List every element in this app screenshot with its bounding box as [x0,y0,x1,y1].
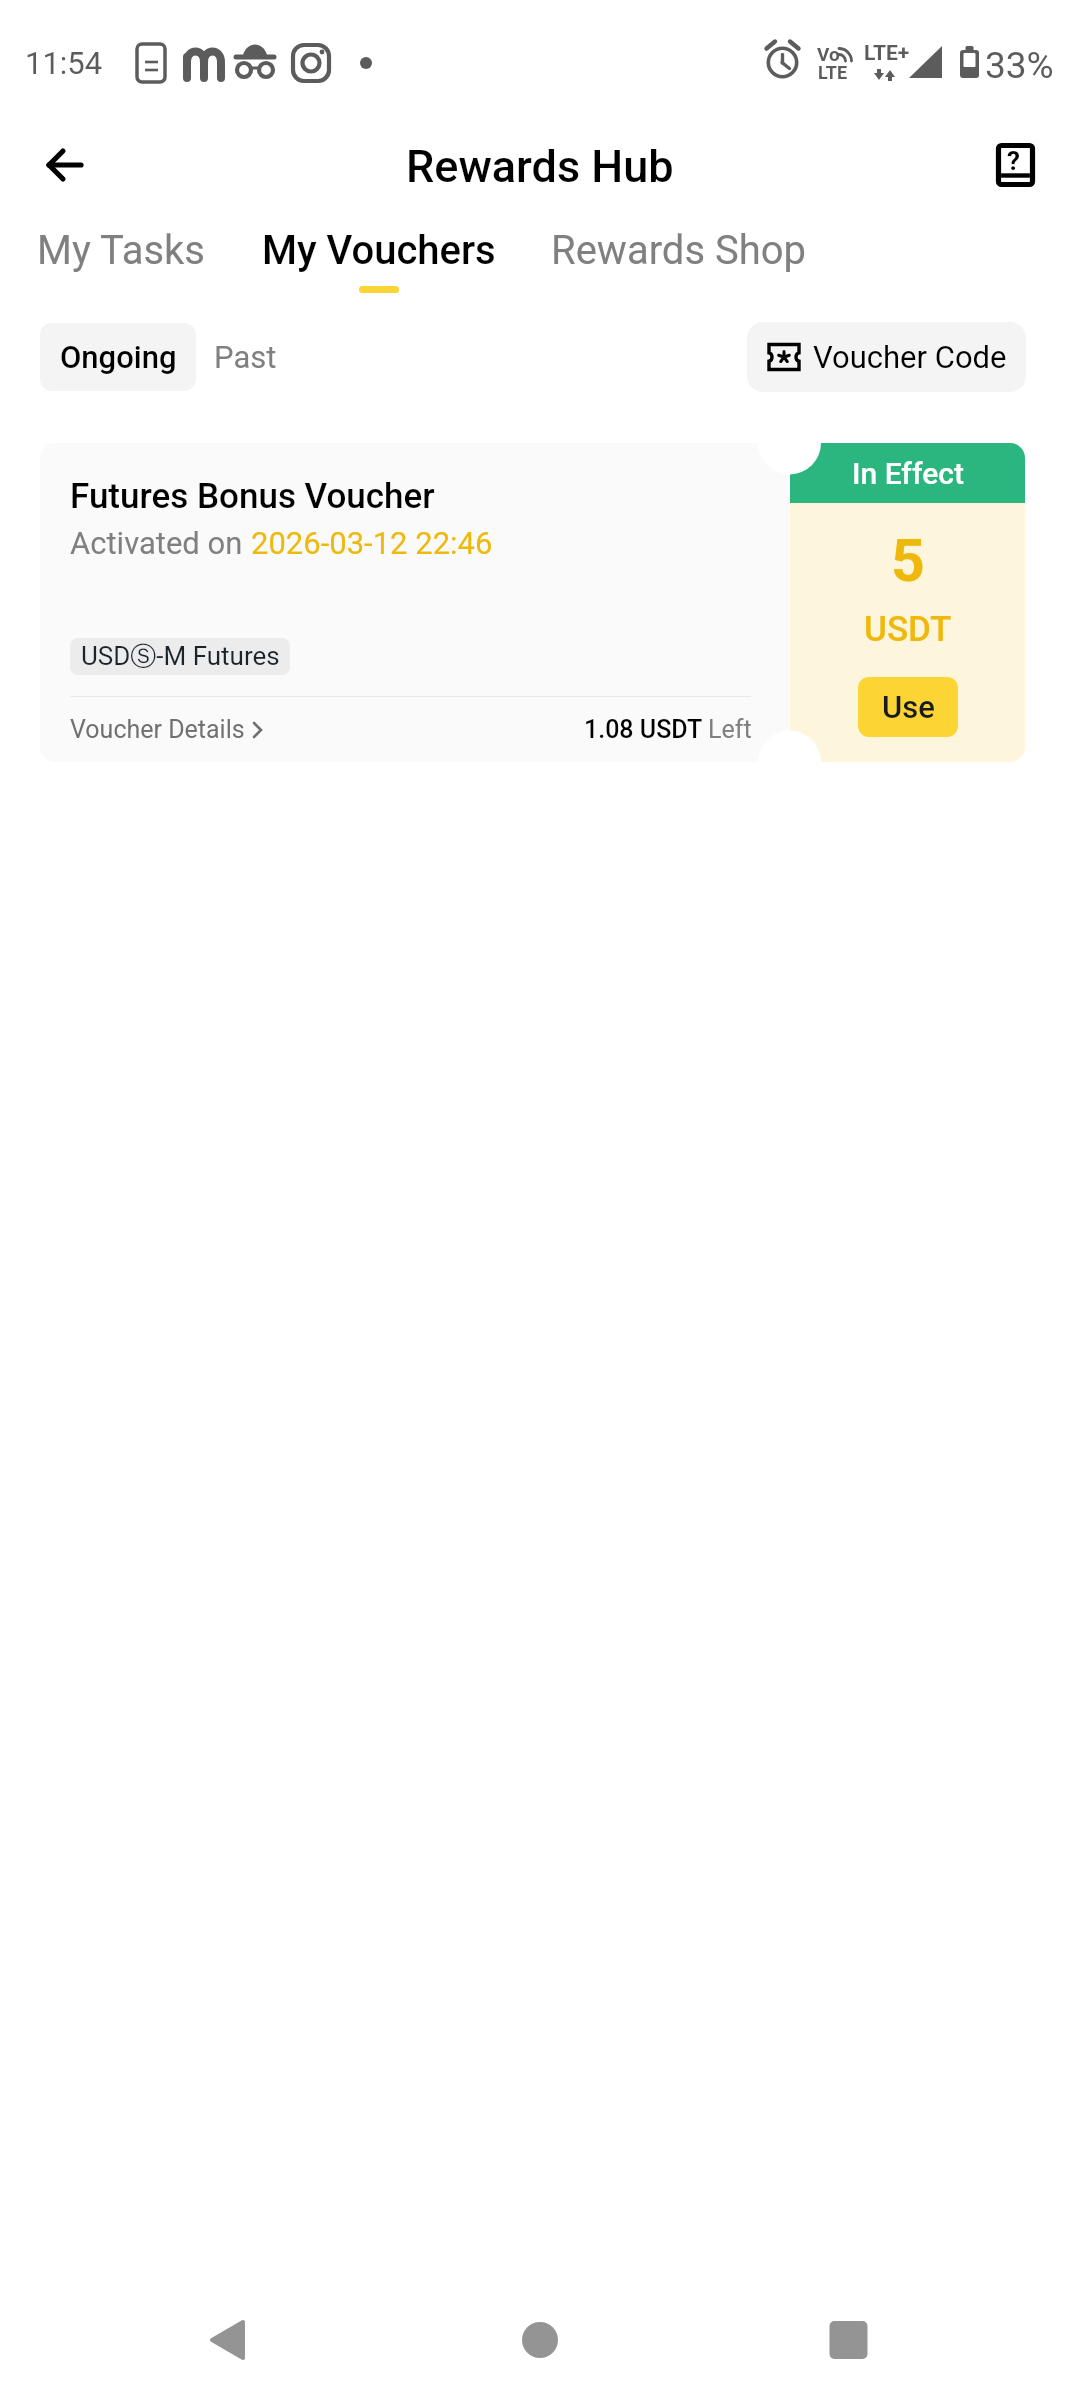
staticText: USDT [864,609,952,645]
staticText: My Vouchers [262,227,496,274]
button[interactable]: Back [28,130,102,200]
button[interactable]: Back [170,2290,284,2390]
staticText: In Effect [852,456,964,491]
staticText: Rewards Shop [551,227,807,274]
button[interactable]: Use [858,677,958,737]
button[interactable]: Recent apps [792,2290,906,2390]
button[interactable]: Rewards Shop [547,223,811,278]
staticText: 33% [985,44,1054,87]
staticText: Voucher Code [813,339,1007,375]
button[interactable]: My Tasks [33,223,209,278]
staticText: Past [214,339,277,375]
staticText: Activated on [70,525,251,561]
button[interactable]: Past [200,322,290,391]
staticText: 2026-03-12 22:46 [251,525,493,561]
button[interactable]: Voucher Code [747,322,1026,392]
staticText: Voucher Details [70,715,245,744]
button[interactable]: Home [483,2290,597,2390]
staticText: Rewards Hub [406,140,674,193]
staticText: Futures Bonus Voucher [70,476,435,517]
staticText: Left [708,715,752,744]
button[interactable]: Help and guide [986,133,1044,195]
staticText: 11:54 [25,45,103,81]
button[interactable]: Voucher Details [70,715,264,744]
button[interactable]: In Effect [40,443,1025,762]
staticText: 1.08 USDT [584,715,708,744]
staticText: Vo [817,43,840,65]
staticText: LTE [818,62,848,83]
staticText: USDⓈ-M Futures [81,640,280,673]
button[interactable]: Ongoing [40,323,196,391]
staticText: ? [1007,146,1020,176]
staticText: 5 [891,526,925,582]
button[interactable]: My Vouchers [258,223,500,293]
staticText: LTE+ [864,41,910,66]
staticText: Ongoing [60,339,177,375]
staticText: Use [882,689,935,725]
staticText: My Tasks [37,227,205,274]
